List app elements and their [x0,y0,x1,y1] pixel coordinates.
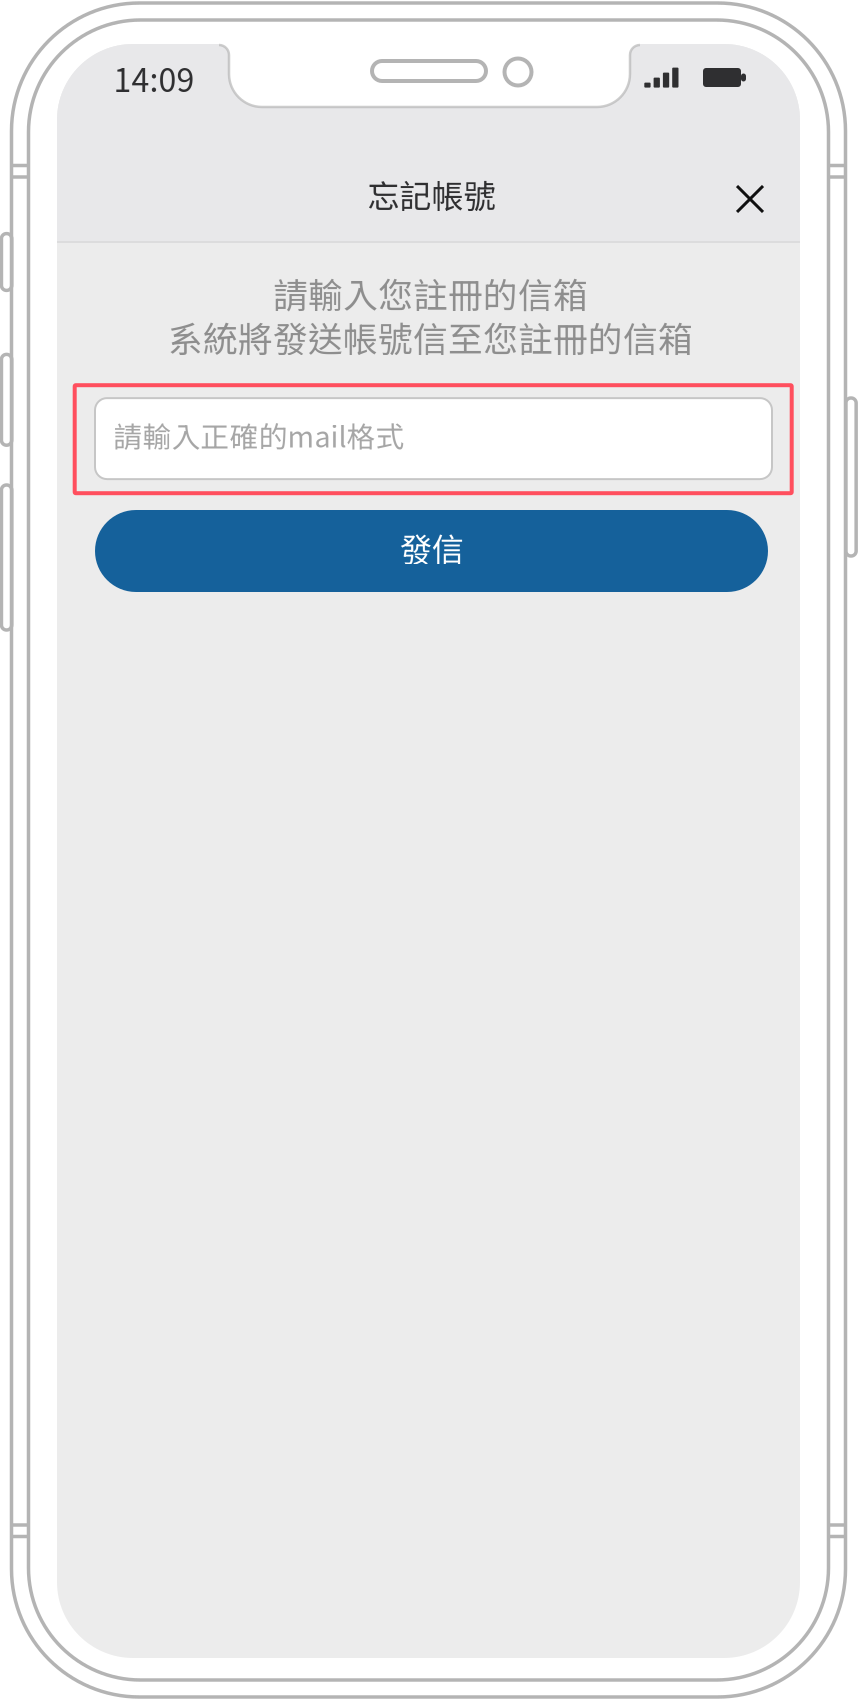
staticText: 忘記帳號 [367,171,495,217]
button[interactable]: Close [708,157,792,241]
staticText: 請輸入正確的mail格式 [113,414,404,456]
staticText: 發信 [400,524,464,571]
button[interactable]: 請輸入正確的mail格式 [95,398,772,479]
button[interactable]: 發信 [95,510,768,592]
staticText: 14:09 [113,55,194,101]
staticText: 請輸入您註冊的信箱 [273,268,588,318]
staticText: 系統將發送帳號信至您註冊的信箱 [168,312,693,362]
